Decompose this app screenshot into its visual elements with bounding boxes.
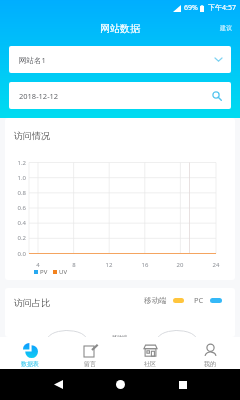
staticText: 下午4:57 (208, 3, 236, 13)
staticText: PC (194, 295, 204, 305)
staticText: 移动端 (144, 296, 167, 305)
staticText: 数据表 (21, 360, 39, 368)
staticText: 留言 (84, 360, 96, 368)
staticText: 4 (30, 261, 46, 269)
button[interactable]: 网站名1 (9, 46, 231, 73)
button[interactable]: 2018-12-12 (9, 82, 231, 109)
button[interactable]: 数据表 (0, 337, 60, 369)
staticText: 访问占比 (14, 297, 50, 308)
staticText: 我的 (204, 360, 216, 368)
staticText: 建议 (220, 24, 232, 32)
other: Home (116, 380, 125, 389)
staticText: 0.8 (5, 189, 26, 197)
staticText: 0.4 (5, 219, 26, 227)
staticText: 12 (101, 261, 117, 269)
staticText: 20 (172, 261, 188, 269)
button[interactable]: 留言 (60, 337, 120, 369)
staticText: 0.6 (5, 204, 26, 212)
staticText: 69% (184, 3, 198, 13)
button[interactable]: 建议 (218, 22, 234, 34)
staticText: PV (40, 268, 48, 276)
staticText: 2018-12-12 (19, 91, 59, 101)
button[interactable]: 社区 (120, 337, 180, 369)
staticText: 社区 (144, 360, 156, 368)
staticText: 0.0 (5, 250, 26, 258)
button[interactable]: 我的 (180, 337, 240, 369)
staticText: 访问情况 (14, 130, 50, 141)
staticText: UV (59, 268, 67, 276)
other: Back (54, 380, 63, 389)
staticText: 网站数据 (100, 22, 140, 35)
staticText: 0.2 (5, 234, 26, 242)
staticText: 24 (208, 261, 224, 269)
staticText: 1.2 (5, 159, 26, 167)
staticText: 16 (137, 261, 153, 269)
staticText: 8 (66, 261, 82, 269)
staticText: 1.0 (5, 174, 26, 182)
staticText: 网站名1 (19, 55, 46, 65)
staticText: 移动端 (112, 334, 127, 337)
